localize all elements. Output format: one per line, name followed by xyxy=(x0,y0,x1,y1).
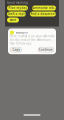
staticText: More xyxy=(9,18,16,22)
staticText: Find a document xyxy=(30,12,55,16)
staticText: Copy xyxy=(12,48,19,51)
button[interactable]: Draft a reply xyxy=(7,11,26,16)
staticText: Continue xyxy=(39,48,53,51)
staticText: Plan my day xyxy=(8,6,26,10)
button[interactable]: Find a document xyxy=(30,11,56,16)
button[interactable]: Continue xyxy=(38,47,54,52)
staticText: Assistant xyxy=(16,31,28,34)
staticText: Good morning xyxy=(7,1,28,4)
staticText: for the rest of the afternoon, plus xyxy=(10,38,54,42)
staticText: Here is what is on your calendar xyxy=(10,34,54,38)
staticText: two follow ups. xyxy=(10,42,32,45)
button[interactable]: More xyxy=(7,17,19,22)
staticText: Summarize inbox xyxy=(32,6,56,10)
button[interactable]: Plan my day xyxy=(7,5,28,10)
button[interactable]: Copy xyxy=(10,47,22,52)
button[interactable]: Summarize inbox xyxy=(32,5,56,10)
staticText: Draft a reply xyxy=(7,12,25,16)
